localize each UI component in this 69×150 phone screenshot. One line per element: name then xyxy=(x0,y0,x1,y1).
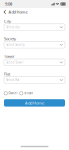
button[interactable]: Select Tower xyxy=(4,59,65,66)
button[interactable]: Select Society xyxy=(4,41,65,48)
staticText: Owner xyxy=(8,91,17,95)
staticText: 9:08 xyxy=(5,1,12,7)
staticText: Tenant xyxy=(24,91,33,95)
button[interactable]: Select city xyxy=(4,24,65,30)
staticText: Tower xyxy=(4,54,15,59)
staticText: Select city xyxy=(6,25,19,29)
button[interactable]: Select Flat xyxy=(4,77,65,83)
button[interactable]: Owner xyxy=(4,91,17,95)
staticText: Add Home xyxy=(8,9,27,15)
button[interactable]: Tenant xyxy=(20,91,33,95)
button[interactable]: Back xyxy=(2,8,7,16)
staticText: Select Flat xyxy=(6,78,19,82)
staticText: Add Home xyxy=(25,100,44,105)
staticText: Select Tower xyxy=(6,61,23,64)
staticText: Select Society xyxy=(6,43,24,46)
staticText: City xyxy=(4,18,11,24)
button[interactable]: Add Home xyxy=(4,99,65,107)
staticText: Society xyxy=(4,36,16,41)
staticText: Flat xyxy=(4,71,10,76)
